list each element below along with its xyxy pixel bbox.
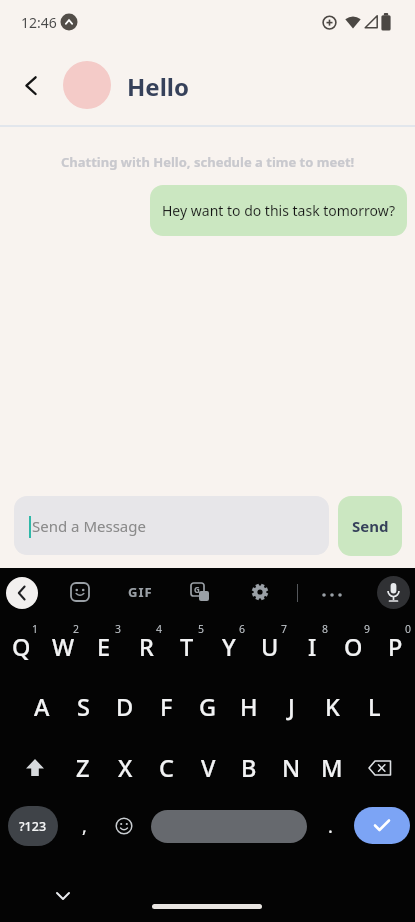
- staticText: I: [308, 631, 317, 663]
- staticText: 0: [405, 622, 412, 636]
- staticText: GIF: [128, 583, 153, 601]
- staticText: 2: [73, 622, 80, 636]
- staticText: 7: [281, 622, 288, 636]
- button[interactable]: Q: [0, 620, 42, 674]
- staticText: S: [77, 691, 90, 723]
- staticText: P: [388, 631, 403, 663]
- staticText: K: [325, 691, 340, 723]
- button[interactable]: Hey want to do this task tomorrow?: [150, 185, 407, 236]
- button[interactable]: J: [270, 680, 312, 734]
- staticText: T: [180, 631, 194, 663]
- button[interactable]: N: [270, 741, 312, 795]
- staticText: E: [97, 631, 111, 663]
- staticText: 3: [115, 622, 122, 636]
- button[interactable]: A: [21, 680, 63, 734]
- button[interactable]: F: [145, 680, 187, 734]
- staticText: Q: [12, 631, 31, 663]
- staticText: 9: [364, 622, 371, 636]
- staticText: C: [159, 752, 174, 784]
- staticText: ,: [82, 814, 87, 839]
- staticText: O: [344, 631, 363, 663]
- button[interactable]: C: [145, 741, 187, 795]
- staticText: D: [116, 691, 134, 723]
- staticText: G: [194, 584, 200, 595]
- button[interactable]: L: [353, 680, 395, 734]
- staticText: B: [241, 752, 257, 784]
- staticText: R: [139, 631, 154, 663]
- button[interactable]: [66, 578, 94, 606]
- button[interactable]: [359, 746, 403, 790]
- button[interactable]: P: [374, 620, 415, 674]
- button[interactable]: [377, 576, 410, 609]
- button[interactable]: ?123: [8, 806, 58, 846]
- button[interactable]: K: [311, 680, 353, 734]
- button[interactable]: I: [291, 620, 333, 674]
- staticText: .: [328, 814, 333, 839]
- button[interactable]: G: [187, 680, 229, 734]
- button[interactable]: [308, 578, 356, 606]
- staticText: 8: [322, 622, 329, 636]
- button[interactable]: Send a Message: [14, 496, 329, 555]
- button[interactable]: D: [104, 680, 146, 734]
- button[interactable]: Z: [62, 741, 104, 795]
- staticText: X: [118, 752, 133, 784]
- button[interactable]: [151, 810, 307, 843]
- button[interactable]: T: [166, 620, 208, 674]
- button[interactable]: .: [318, 806, 342, 846]
- staticText: 5: [198, 622, 205, 636]
- staticText: A: [34, 691, 50, 723]
- button[interactable]: [354, 807, 410, 844]
- button[interactable]: [14, 746, 56, 790]
- staticText: ?123: [19, 818, 47, 835]
- button[interactable]: M: [311, 741, 353, 795]
- staticText: H: [240, 691, 258, 723]
- staticText: Hello: [127, 70, 189, 102]
- staticText: Send a Message: [32, 516, 146, 536]
- staticText: U: [261, 631, 279, 663]
- button[interactable]: R: [125, 620, 167, 674]
- button[interactable]: [246, 578, 274, 606]
- button[interactable]: X: [104, 741, 146, 795]
- button[interactable]: S: [62, 680, 104, 734]
- button[interactable]: [6, 577, 38, 609]
- button[interactable]: V: [187, 741, 229, 795]
- button[interactable]: [63, 61, 111, 109]
- staticText: Z: [76, 752, 90, 784]
- staticText: Y: [222, 631, 236, 663]
- button[interactable]: U: [249, 620, 291, 674]
- staticText: 1: [32, 622, 39, 636]
- staticText: 6: [239, 622, 246, 636]
- staticText: Hey want to do this task tomorrow?: [162, 201, 396, 220]
- staticText: L: [368, 691, 381, 723]
- staticText: Chatting with Hello, schedule a time to …: [61, 153, 355, 171]
- button[interactable]: ,: [72, 806, 96, 846]
- button[interactable]: W: [42, 620, 84, 674]
- button[interactable]: G: [186, 578, 214, 606]
- button[interactable]: E: [83, 620, 125, 674]
- button[interactable]: [110, 812, 138, 840]
- button[interactable]: [14, 74, 46, 98]
- staticText: Send: [352, 516, 389, 536]
- staticText: N: [282, 752, 301, 784]
- button[interactable]: B: [228, 741, 270, 795]
- button[interactable]: [50, 885, 76, 907]
- staticText: 4: [156, 622, 163, 636]
- staticText: J: [288, 691, 295, 723]
- staticText: F: [160, 691, 173, 723]
- staticText: V: [201, 752, 216, 784]
- button[interactable]: Y: [208, 620, 250, 674]
- staticText: 12:46: [21, 13, 57, 32]
- button[interactable]: O: [332, 620, 374, 674]
- staticText: W: [52, 631, 75, 663]
- button[interactable]: H: [228, 680, 270, 734]
- staticText: M: [321, 752, 343, 784]
- staticText: G: [199, 691, 217, 723]
- button[interactable]: Send: [338, 496, 402, 556]
- button[interactable]: GIF: [120, 578, 160, 606]
